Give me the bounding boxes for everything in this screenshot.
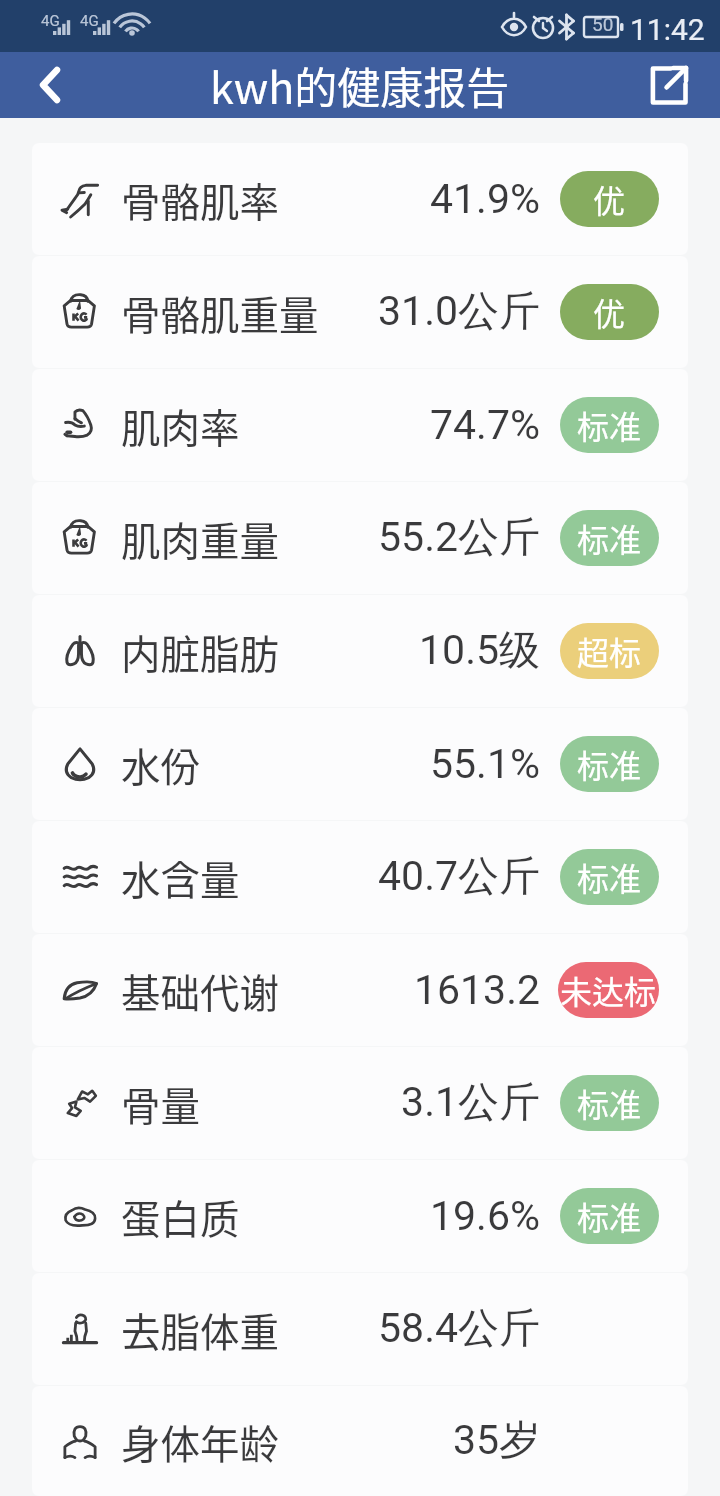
staticText: 标准	[577, 1193, 642, 1239]
staticText: 3.1公斤	[401, 1077, 540, 1129]
staticText: 31.0公斤	[378, 286, 540, 338]
staticText: 55.1%	[430, 740, 540, 788]
staticText: 4G	[41, 12, 60, 30]
button[interactable]: 蛋白质	[32, 1160, 688, 1272]
staticText: 1613.2	[413, 966, 540, 1014]
button[interactable]: 水含量	[32, 821, 688, 933]
button[interactable]: Back	[0, 52, 100, 118]
button[interactable]: 未达标	[560, 962, 657, 1018]
staticText: 19.6%	[430, 1192, 540, 1240]
staticText: 41.9%	[430, 175, 540, 223]
button[interactable]: 身体年龄	[32, 1386, 688, 1496]
button[interactable]: 优	[562, 171, 657, 227]
staticText: 55.2公斤	[378, 512, 540, 564]
staticText: 内脏脂肪	[121, 623, 279, 680]
button[interactable]: 骨量	[32, 1047, 688, 1159]
button[interactable]: 标准	[562, 736, 657, 792]
staticText: 身体年龄	[121, 1413, 279, 1470]
staticText: 标准	[577, 854, 642, 900]
staticText: 4G	[80, 12, 99, 30]
button[interactable]: 肌肉重量	[32, 482, 688, 594]
button[interactable]: 标准	[562, 1075, 657, 1131]
staticText: 蛋白质	[121, 1188, 240, 1245]
staticText: 骨量	[121, 1075, 200, 1132]
staticText: 35岁	[452, 1415, 540, 1467]
staticText: 标准	[577, 402, 642, 448]
button[interactable]: Share	[617, 52, 720, 118]
button[interactable]: 优	[562, 284, 657, 340]
staticText: 标准	[577, 741, 642, 787]
staticText: 优	[593, 289, 626, 335]
button[interactable]: 水份	[32, 708, 688, 820]
button[interactable]: 标准	[562, 397, 657, 453]
staticText: 11:42	[630, 12, 705, 47]
staticText: 58.4公斤	[378, 1303, 540, 1355]
staticText: 74.7%	[430, 401, 540, 449]
button[interactable]: 标准	[562, 1188, 657, 1244]
staticText: 水含量	[121, 849, 240, 906]
staticText: 标准	[577, 1080, 642, 1126]
staticText: 未达标	[560, 967, 657, 1013]
staticText: 肌肉重量	[121, 510, 279, 567]
staticText: 骨骼肌率	[121, 171, 279, 228]
staticText: 50	[592, 13, 614, 35]
staticText: kwh的健康报告	[210, 54, 510, 116]
staticText: 水份	[121, 736, 200, 793]
staticText: 肌肉率	[121, 397, 240, 454]
staticText: 骨骼肌重量	[121, 284, 319, 341]
staticText: 超标	[577, 628, 642, 674]
button[interactable]: 标准	[562, 849, 657, 905]
button[interactable]: 骨骼肌率	[32, 143, 688, 255]
staticText: 10.5级	[419, 625, 540, 677]
button[interactable]: 标准	[562, 510, 657, 566]
button[interactable]: 超标	[562, 623, 657, 679]
staticText: 去脂体重	[121, 1301, 279, 1358]
button[interactable]: 内脏脂肪	[32, 595, 688, 707]
button[interactable]: 去脂体重	[32, 1273, 688, 1385]
staticText: 基础代谢	[121, 962, 279, 1019]
staticText: 40.7公斤	[378, 851, 540, 903]
button[interactable]: 骨骼肌重量	[32, 256, 688, 368]
staticText: 优	[593, 176, 626, 222]
staticText: 标准	[577, 515, 642, 561]
button[interactable]: 肌肉率	[32, 369, 688, 481]
button[interactable]: 基础代谢	[32, 934, 688, 1046]
